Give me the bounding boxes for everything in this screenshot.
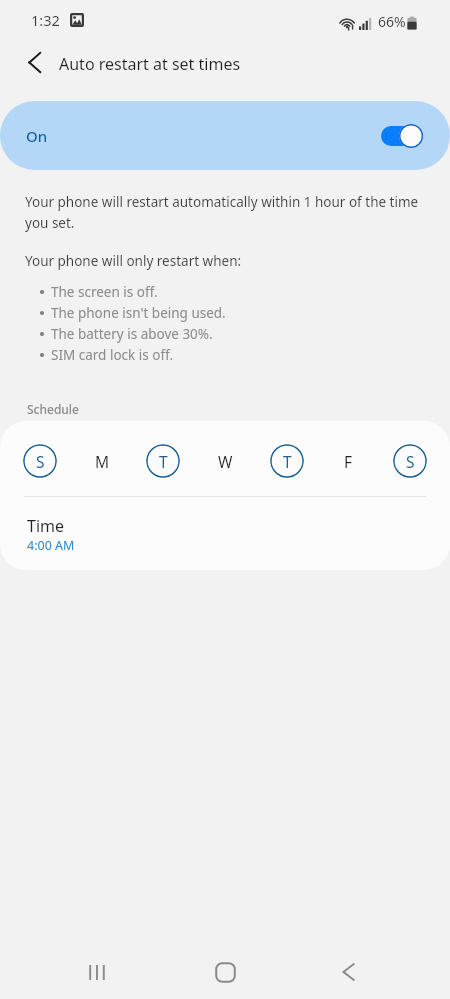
button[interactable]: Recent apps xyxy=(75,950,119,994)
staticText: 1:32 xyxy=(31,10,60,30)
button[interactable]: On xyxy=(0,101,450,170)
staticText: Your phone will restart automatically wi… xyxy=(25,193,442,232)
staticText: W xyxy=(218,451,233,472)
button[interactable]: S xyxy=(23,444,57,478)
button[interactable]: W xyxy=(208,444,242,478)
button[interactable]: T xyxy=(146,444,180,478)
staticText: T xyxy=(283,451,292,472)
button[interactable]: F xyxy=(331,444,365,478)
staticText: S xyxy=(36,451,45,472)
staticText: Time xyxy=(27,515,65,537)
staticText: M xyxy=(95,451,110,472)
staticText: Auto restart at set times xyxy=(59,53,241,75)
staticText: The screen is off. xyxy=(51,283,158,301)
staticText: 66% xyxy=(378,12,406,31)
button[interactable]: M xyxy=(85,444,119,478)
staticText: 4:00 AM xyxy=(27,537,75,554)
button[interactable]: Home xyxy=(203,950,247,994)
staticText: Your phone will only restart when: xyxy=(25,252,242,270)
staticText: S xyxy=(406,451,415,472)
button[interactable]: Toggle auto restart xyxy=(381,123,424,149)
button[interactable]: Navigate up xyxy=(10,40,58,88)
staticText: Schedule xyxy=(27,401,79,417)
staticText: The battery is above 30%. xyxy=(51,325,213,343)
staticText: On xyxy=(26,126,48,146)
staticText: The phone isn't being used. xyxy=(51,304,226,322)
button[interactable]: S xyxy=(393,444,427,478)
button[interactable]: Time xyxy=(0,497,450,570)
staticText: T xyxy=(159,451,168,472)
staticText: F xyxy=(344,451,353,472)
button[interactable]: Back xyxy=(326,950,370,994)
button[interactable]: T xyxy=(270,444,304,478)
staticText: SIM card lock is off. xyxy=(51,346,174,364)
